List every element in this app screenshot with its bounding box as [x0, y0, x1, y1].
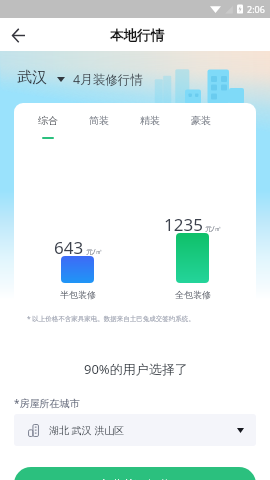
button[interactable]: Back	[6, 23, 30, 47]
staticText: 武汉	[17, 68, 47, 87]
button[interactable]: 豪装	[175, 103, 226, 139]
staticText: 湖北 武汉 洪山区	[49, 423, 125, 437]
staticText: 豪装	[191, 114, 211, 127]
staticText: 精装	[140, 114, 160, 127]
button[interactable]: 湖北 武汉 洪山区	[14, 414, 256, 446]
staticText: 643	[54, 236, 84, 259]
staticText: 免费获取报价	[99, 477, 171, 480]
staticText: 全包装修	[175, 289, 211, 300]
button[interactable]: 精装	[124, 103, 175, 139]
staticText: 元/㎡	[86, 247, 103, 257]
staticText: 综合	[38, 114, 58, 127]
button[interactable]: 简装	[73, 103, 124, 139]
staticText: 2:06	[247, 3, 265, 15]
staticText: 元/㎡	[205, 224, 222, 234]
staticText: 半包装修	[60, 289, 96, 300]
staticText: *房屋所在城市	[14, 396, 80, 410]
staticText: 90%的用户选择了	[84, 360, 188, 378]
staticText: 4月装修行情	[73, 71, 143, 88]
button[interactable]: 综合	[22, 103, 73, 139]
staticText: * 以上价格不含家具家电。数据来自土巴兔成交签约系统。	[27, 314, 195, 323]
staticText: 1235	[164, 213, 203, 236]
staticText: 简装	[89, 114, 109, 127]
button[interactable]: 免费获取报价	[14, 467, 256, 480]
staticText: 本地行情	[110, 27, 164, 44]
